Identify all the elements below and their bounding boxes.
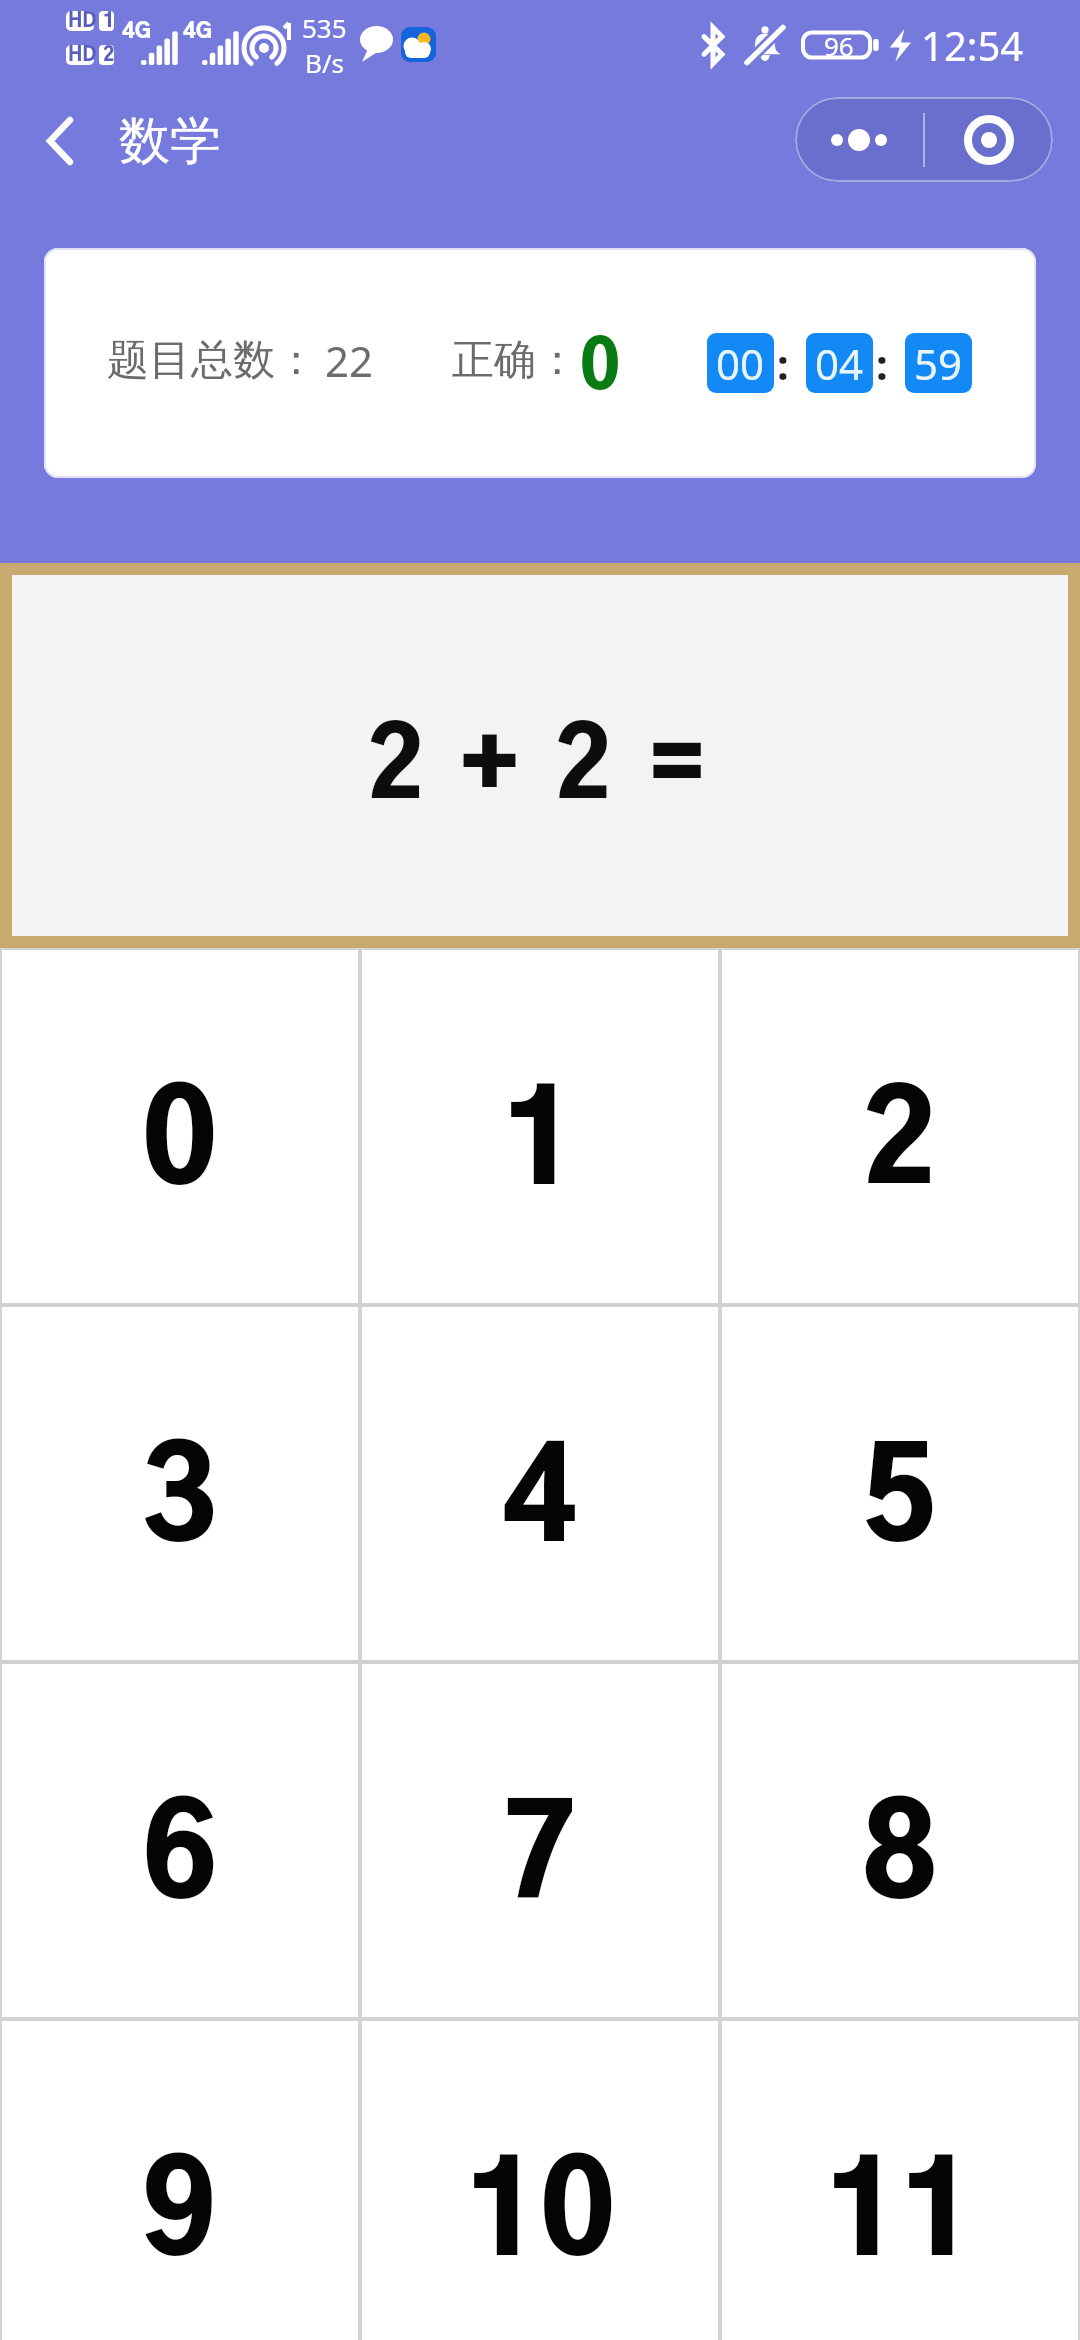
staticText: 22 — [325, 332, 374, 389]
staticText: 题目总数： — [107, 334, 317, 387]
button[interactable]: Back — [22, 101, 98, 181]
button[interactable]: 5 — [720, 1305, 1080, 1662]
staticText: 12:54 — [921, 18, 1024, 72]
button[interactable]: 1 — [360, 948, 720, 1305]
staticText: 7 — [502, 1798, 578, 1922]
staticText: 59 — [914, 335, 963, 392]
button[interactable]: More options — [795, 97, 923, 182]
staticText: : — [876, 335, 888, 392]
staticText: 8 — [862, 1798, 938, 1922]
button[interactable]: 8 — [720, 1662, 1080, 2019]
staticText: 10 — [465, 2155, 616, 2279]
staticText: 00 — [716, 335, 765, 392]
staticText: 2 — [862, 1084, 938, 1208]
button[interactable]: 0 — [0, 948, 360, 1305]
button[interactable]: 2 — [720, 948, 1080, 1305]
staticText: 04 — [815, 335, 864, 392]
staticText: 535 — [302, 10, 347, 45]
staticText: 2 — [103, 46, 115, 65]
staticText: 4G — [122, 21, 151, 42]
staticText: 4G — [183, 21, 212, 42]
staticText: 11 — [825, 2155, 976, 2279]
button[interactable]: 3 — [0, 1305, 360, 1662]
staticText: HD — [68, 12, 97, 31]
staticText: B/s — [305, 45, 345, 80]
staticText: 4 — [502, 1441, 578, 1565]
staticText: 2 + 2 = — [367, 722, 713, 817]
staticText: 3 — [142, 1441, 218, 1565]
staticText: 0 — [580, 336, 620, 402]
staticText: HD — [68, 46, 97, 65]
staticText: 9 — [142, 2155, 218, 2279]
button[interactable]: 10 — [360, 2019, 720, 2340]
button[interactable]: 4 — [360, 1305, 720, 1662]
staticText: 0 — [142, 1084, 218, 1208]
button[interactable]: 9 — [0, 2019, 360, 2340]
staticText: 正确： — [452, 334, 578, 387]
staticText: 96 — [824, 28, 854, 63]
staticText: 6 — [142, 1798, 218, 1922]
button[interactable]: 7 — [360, 1662, 720, 2019]
staticText: : — [777, 335, 789, 392]
staticText: 1 — [103, 12, 115, 31]
button[interactable]: 6 — [0, 1662, 360, 2019]
button[interactable]: Close mini program — [925, 97, 1053, 182]
button[interactable]: 11 — [720, 2019, 1080, 2340]
staticText: 5 — [862, 1441, 938, 1565]
staticText: 1 — [502, 1084, 578, 1208]
staticText: 数学 — [119, 109, 221, 173]
